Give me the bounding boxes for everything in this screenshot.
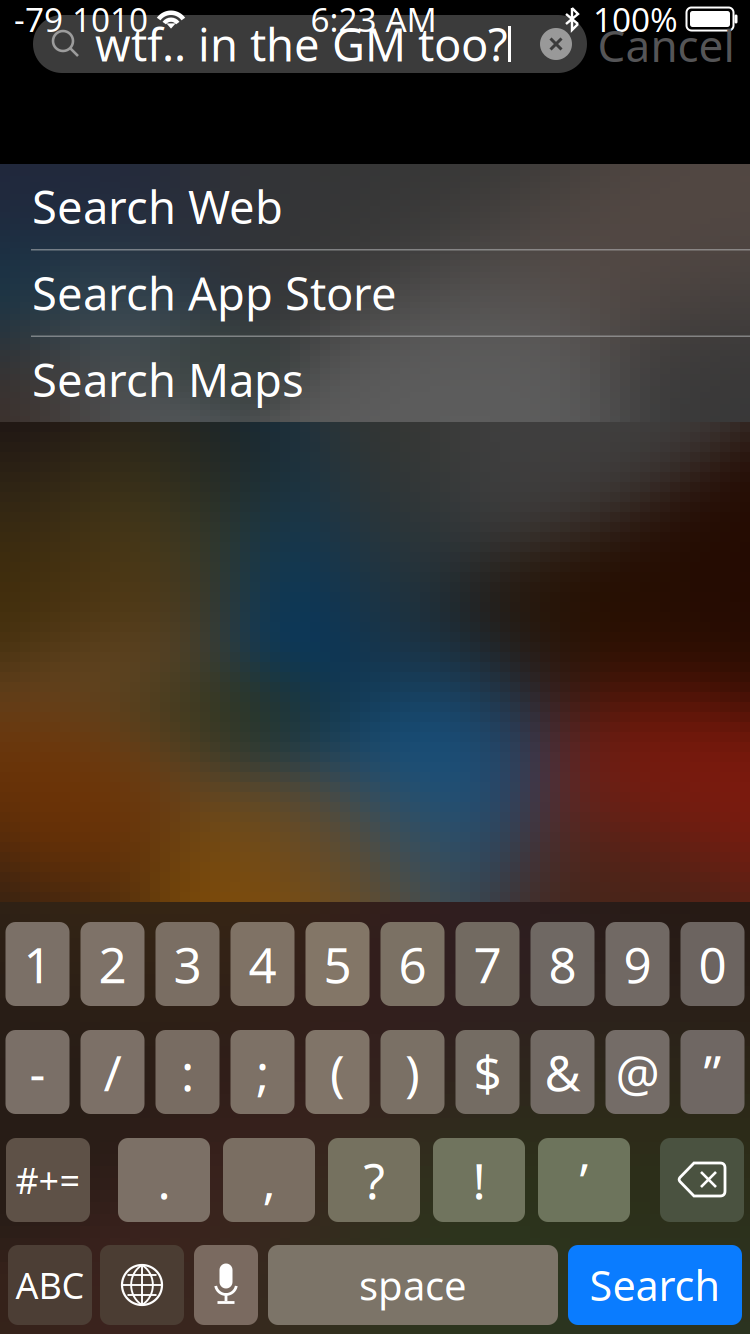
button[interactable]: Search Web [0, 164, 750, 249]
button[interactable]: 3 [155, 922, 219, 1006]
staticText: : [181, 1039, 194, 1105]
button[interactable]: Search App Store [0, 250, 750, 335]
staticText: Search [589, 1258, 720, 1312]
staticText: 3 [173, 931, 201, 997]
button[interactable]: 9 [605, 922, 669, 1006]
staticText: 2 [98, 931, 126, 997]
staticText: #+= [15, 1156, 80, 1204]
staticText: $ [473, 1039, 501, 1105]
staticText: 9 [623, 931, 651, 997]
staticText: ’ [579, 1147, 588, 1213]
button[interactable]: 6 [380, 922, 444, 1006]
staticText: ) [405, 1039, 420, 1105]
button[interactable]: ABC [8, 1245, 92, 1325]
staticText: & [544, 1039, 580, 1105]
button[interactable]: ” [680, 1030, 744, 1114]
button[interactable]: $ [455, 1030, 519, 1114]
button[interactable]: @ [605, 1030, 669, 1114]
button[interactable]: #+= [6, 1138, 90, 1222]
button[interactable]: ’ [538, 1138, 630, 1222]
staticText: / [103, 1039, 121, 1105]
staticText: 6:23 AM [310, 0, 436, 41]
staticText: 100% [593, 0, 678, 41]
staticText: - [29, 1039, 45, 1105]
button[interactable]: ( [305, 1030, 369, 1114]
button[interactable]: ! [433, 1138, 525, 1222]
button[interactable]: 4 [230, 922, 294, 1006]
button[interactable]: 0 [680, 922, 744, 1006]
button[interactable]: Next keyboard [100, 1245, 184, 1325]
button[interactable]: space [268, 1245, 558, 1325]
button[interactable]: ; [230, 1030, 294, 1114]
button[interactable]: , [223, 1138, 315, 1222]
button[interactable]: Cancel [591, 16, 741, 74]
staticText: ” [703, 1039, 721, 1105]
staticText: ( [330, 1039, 345, 1105]
staticText: 4 [248, 931, 276, 997]
staticText: Search Web [32, 176, 283, 237]
button[interactable]: . [118, 1138, 210, 1222]
button[interactable]: Dictate [194, 1245, 258, 1325]
button[interactable]: 7 [455, 922, 519, 1006]
staticText: ; [256, 1039, 269, 1105]
staticText: Search Maps [32, 349, 304, 410]
button[interactable]: Search [568, 1245, 742, 1325]
staticText: ? [363, 1147, 384, 1213]
staticText: -79 1010 [14, 0, 148, 41]
staticText: 7 [473, 931, 501, 997]
staticText: 1 [23, 931, 51, 997]
staticText: . [157, 1147, 170, 1213]
staticText: ! [472, 1147, 485, 1213]
button[interactable]: wtf.. in the GM too? [33, 15, 587, 73]
button[interactable]: 5 [305, 922, 369, 1006]
button[interactable]: - [5, 1030, 69, 1114]
staticText: , [262, 1147, 275, 1213]
staticText: ABC [15, 1261, 84, 1309]
button[interactable]: / [80, 1030, 144, 1114]
button[interactable]: 1 [5, 922, 69, 1006]
button[interactable]: Search Maps [0, 337, 750, 422]
button[interactable]: & [530, 1030, 594, 1114]
button[interactable]: Delete [660, 1138, 744, 1222]
button[interactable]: 2 [80, 922, 144, 1006]
staticText: 0 [698, 931, 726, 997]
button[interactable]: 8 [530, 922, 594, 1006]
staticText: wtf.. in the GM too? [95, 14, 508, 74]
button[interactable]: : [155, 1030, 219, 1114]
staticText: 6 [398, 931, 426, 997]
button[interactable]: ) [380, 1030, 444, 1114]
staticText: 8 [548, 931, 576, 997]
staticText: Search App Store [32, 263, 397, 323]
staticText: space [359, 1258, 467, 1311]
staticText: Cancel [597, 16, 734, 74]
button[interactable]: ? [328, 1138, 420, 1222]
staticText: 5 [323, 931, 351, 997]
staticText: @ [615, 1039, 659, 1105]
